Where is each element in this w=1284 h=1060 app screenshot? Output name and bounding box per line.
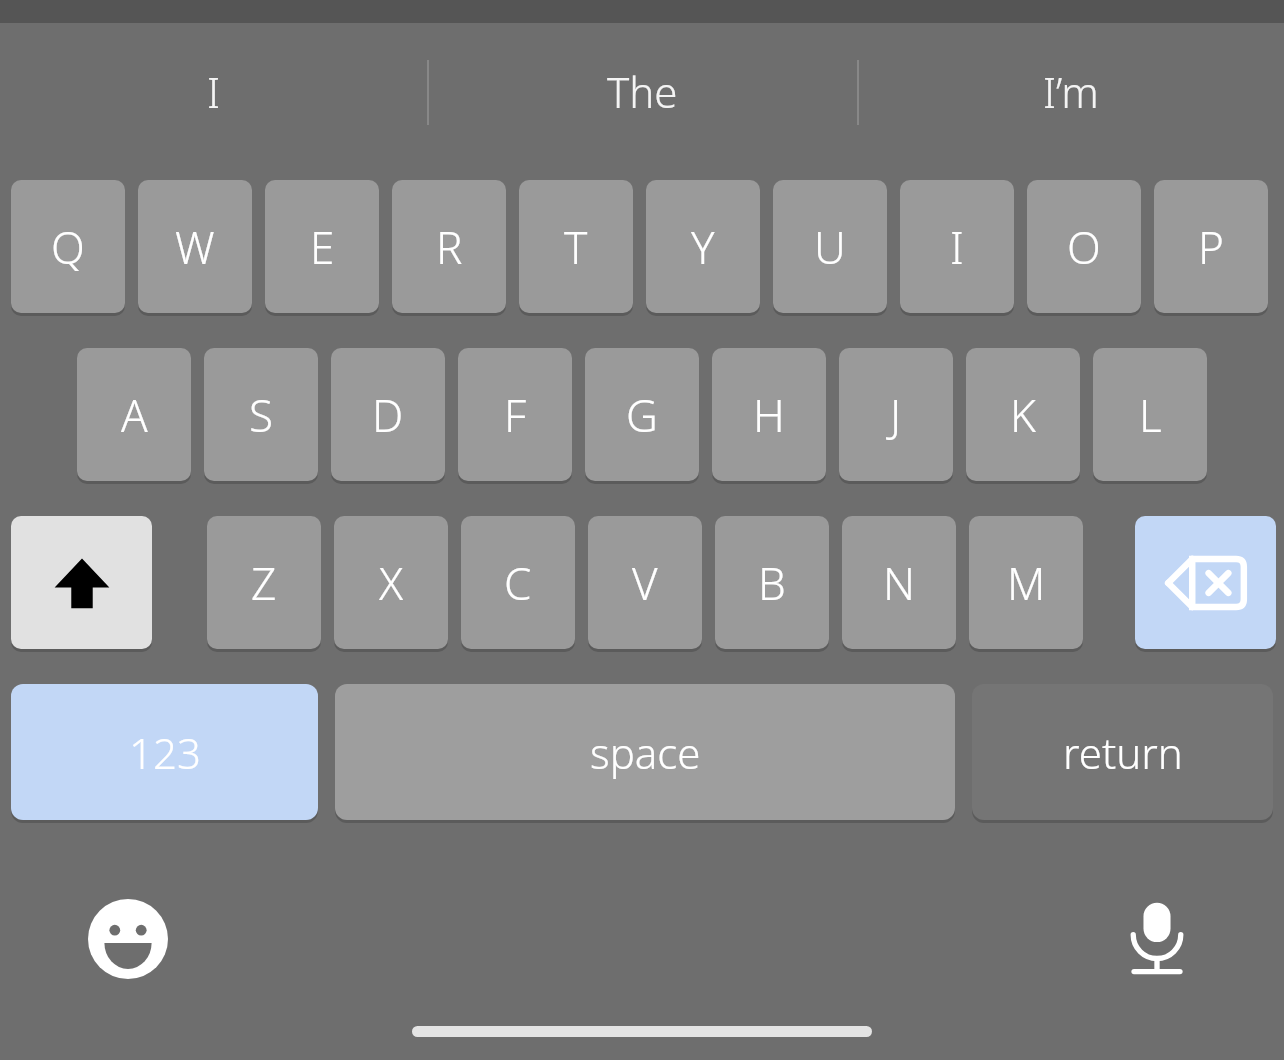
staticText: L	[1139, 385, 1162, 445]
button[interactable]: I	[900, 180, 1014, 313]
button[interactable]: H	[712, 348, 826, 481]
button[interactable]: I’m	[857, 23, 1284, 160]
button[interactable]: F	[458, 348, 572, 481]
button[interactable]: R	[392, 180, 506, 313]
button[interactable]: L	[1093, 348, 1207, 481]
button[interactable]: C	[461, 516, 575, 649]
staticText: Z	[251, 553, 277, 613]
button[interactable]: E	[265, 180, 379, 313]
staticText: G	[626, 385, 658, 445]
button[interactable]: U	[773, 180, 887, 313]
staticText: E	[310, 217, 335, 277]
staticText: 123	[129, 724, 201, 781]
staticText: The	[607, 63, 678, 120]
staticText: V	[632, 553, 658, 613]
staticText: Q	[51, 217, 85, 277]
staticText: F	[504, 385, 527, 445]
staticText: I	[207, 63, 221, 120]
staticText: R	[436, 217, 463, 277]
staticText: X	[379, 553, 404, 613]
staticText: Y	[691, 217, 715, 277]
button[interactable]: Y	[646, 180, 760, 313]
staticText: D	[372, 385, 404, 445]
button[interactable]: Q	[11, 180, 125, 313]
button[interactable]: I	[0, 23, 427, 160]
staticText: T	[564, 217, 588, 277]
button[interactable]: T	[519, 180, 633, 313]
staticText: N	[883, 553, 916, 613]
button[interactable]: P	[1154, 180, 1268, 313]
staticText: A	[121, 385, 148, 445]
staticText: return	[1063, 724, 1183, 781]
staticText: O	[1067, 217, 1101, 277]
staticText: I’m	[1043, 63, 1099, 120]
button[interactable]: Z	[207, 516, 321, 649]
staticText: H	[753, 385, 785, 445]
staticText: M	[1007, 553, 1046, 613]
button[interactable]: 123	[11, 684, 318, 820]
button[interactable]: K	[966, 348, 1080, 481]
staticText: W	[175, 217, 215, 277]
button[interactable]: Backspace	[1135, 516, 1276, 649]
button[interactable]: D	[331, 348, 445, 481]
button[interactable]: space	[335, 684, 955, 820]
button[interactable]: return	[972, 684, 1273, 820]
button[interactable]: Shift	[11, 516, 152, 649]
staticText: J	[890, 385, 902, 445]
staticText: U	[814, 217, 846, 277]
button[interactable]: W	[138, 180, 252, 313]
staticText: K	[1010, 385, 1036, 445]
button[interactable]: A	[77, 348, 191, 481]
staticText: I	[950, 217, 964, 277]
button[interactable]: X	[334, 516, 448, 649]
staticText: S	[249, 385, 274, 445]
staticText: P	[1198, 217, 1224, 277]
button[interactable]: Emoji keyboard	[87, 898, 169, 980]
button[interactable]: O	[1027, 180, 1141, 313]
staticText: B	[758, 553, 786, 613]
button[interactable]: The	[427, 23, 857, 160]
button[interactable]: N	[842, 516, 956, 649]
button[interactable]: G	[585, 348, 699, 481]
staticText: space	[590, 724, 701, 781]
button[interactable]: V	[588, 516, 702, 649]
button[interactable]: S	[204, 348, 318, 481]
button[interactable]: Dictation	[1115, 896, 1199, 980]
button[interactable]: J	[839, 348, 953, 481]
button[interactable]: B	[715, 516, 829, 649]
button[interactable]: M	[969, 516, 1083, 649]
staticText: C	[504, 553, 532, 613]
